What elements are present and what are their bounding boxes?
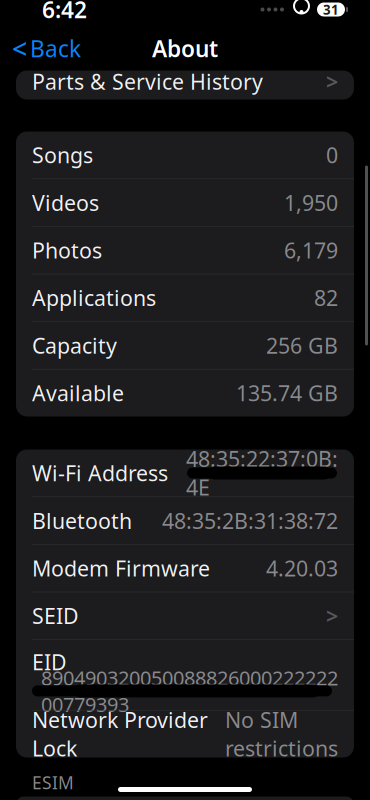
staticText: EID [32, 648, 67, 676]
staticText: About [152, 33, 218, 63]
staticText: Back [30, 33, 81, 63]
staticText: 48:35:22:37:0B:4E [186, 445, 338, 501]
button[interactable]: Parts & Service History [16, 70, 354, 92]
staticText: ESIM [32, 771, 74, 794]
staticText: 6,179 [284, 236, 338, 264]
staticText: Applications [32, 284, 156, 312]
staticText: Videos [32, 188, 99, 217]
button[interactable]: SEID [16, 592, 354, 639]
staticText: SEID [32, 602, 79, 630]
staticText: Available [32, 379, 124, 407]
button[interactable]: < [0, 31, 91, 65]
staticText: Photos [32, 236, 102, 264]
staticText: > [326, 602, 338, 630]
staticText: Wi-Fi Address [32, 459, 168, 487]
staticText: 4.20.03 [266, 554, 338, 582]
staticText: 31 [323, 1, 339, 18]
staticText: 48:35:2B:31:38:72 [162, 506, 338, 535]
staticText: 135.74 GB [236, 379, 338, 407]
staticText: 6:42 [42, 0, 87, 24]
staticText: No SIM restrictions [225, 706, 338, 762]
staticText: Songs [32, 141, 93, 169]
staticText: Bluetooth [32, 506, 132, 535]
staticText: 256 GB [266, 331, 338, 359]
staticText: > [326, 67, 338, 96]
staticText: Modem Firmware [32, 554, 210, 582]
staticText: < [12, 31, 27, 66]
staticText: 0 [326, 141, 338, 169]
staticText: Capacity [32, 331, 117, 359]
staticText: 82 [314, 284, 338, 312]
staticText: 89049032005008882600022222200779393 [41, 664, 338, 717]
staticText: 1,950 [284, 188, 338, 217]
staticText: Parts & Service History [32, 67, 263, 96]
staticText: Network Provider Lock [32, 706, 208, 762]
